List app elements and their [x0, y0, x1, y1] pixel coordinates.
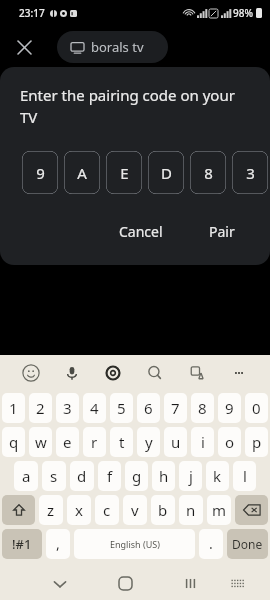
- staticText: y: [145, 432, 153, 452]
- button[interactable]: More options: [218, 355, 260, 391]
- staticText: 0: [252, 398, 261, 418]
- button[interactable]: A: [64, 151, 100, 194]
- button[interactable]: r: [83, 427, 106, 457]
- button[interactable]: 9: [22, 151, 58, 194]
- button[interactable]: w: [29, 427, 52, 457]
- button[interactable]: Shift: [2, 495, 35, 525]
- staticText: t: [119, 432, 125, 452]
- button[interactable]: h: [152, 461, 175, 491]
- staticText: Cancel: [119, 222, 163, 241]
- button[interactable]: a: [14, 461, 38, 491]
- button[interactable]: Settings: [92, 355, 134, 391]
- button[interactable]: Cancel: [109, 216, 173, 247]
- button[interactable]: k: [206, 461, 229, 491]
- button[interactable]: Search: [134, 355, 176, 391]
- button[interactable]: 8: [191, 393, 214, 423]
- staticText: D: [161, 163, 172, 183]
- button[interactable]: Recent apps: [171, 567, 209, 600]
- staticText: c: [103, 500, 111, 520]
- staticText: z: [47, 500, 55, 520]
- button[interactable]: 3: [56, 393, 79, 423]
- button[interactable]: Hide keyboard: [41, 567, 79, 600]
- staticText: f: [107, 466, 113, 486]
- button[interactable]: u: [164, 427, 187, 457]
- staticText: Done: [232, 536, 263, 552]
- staticText: m: [212, 500, 227, 520]
- button[interactable]: g: [125, 461, 148, 491]
- button[interactable]: English (US): [74, 529, 195, 559]
- button[interactable]: Home: [106, 567, 144, 600]
- button[interactable]: !#1: [2, 529, 42, 559]
- button[interactable]: 4: [83, 393, 106, 423]
- staticText: 1: [9, 398, 18, 418]
- button[interactable]: q: [2, 427, 25, 457]
- button[interactable]: j: [179, 461, 202, 491]
- button[interactable]: Voice input: [51, 355, 92, 391]
- button[interactable]: d: [70, 461, 94, 491]
- button[interactable]: Translate: [176, 355, 218, 391]
- staticText: borals tv: [91, 38, 144, 56]
- button[interactable]: Pair: [199, 216, 245, 247]
- button[interactable]: t: [110, 427, 133, 457]
- staticText: g: [132, 466, 142, 486]
- button[interactable]: 6: [137, 393, 160, 423]
- button[interactable]: e: [56, 427, 79, 457]
- staticText: E: [120, 163, 129, 183]
- button[interactable]: n: [179, 495, 203, 525]
- button[interactable]: m: [207, 495, 231, 525]
- staticText: 2: [36, 398, 45, 418]
- staticText: u: [171, 432, 181, 452]
- staticText: n: [186, 500, 196, 520]
- button[interactable]: l: [233, 461, 256, 491]
- button[interactable]: f: [98, 461, 121, 491]
- staticText: i: [201, 432, 205, 452]
- button[interactable]: 1: [2, 393, 25, 423]
- staticText: English (US): [110, 538, 160, 550]
- staticText: a: [22, 466, 31, 486]
- staticText: d: [77, 466, 87, 486]
- staticText: k: [213, 466, 222, 486]
- staticText: 3: [63, 398, 72, 418]
- staticText: 8: [198, 398, 207, 418]
- staticText: Enter the pairing code on your TV: [20, 85, 244, 128]
- staticText: l: [243, 466, 247, 486]
- button[interactable]: 7: [164, 393, 187, 423]
- button[interactable]: Emoji: [10, 355, 51, 391]
- button[interactable]: 5: [110, 393, 133, 423]
- button[interactable]: borals tv: [57, 31, 168, 63]
- button[interactable]: 9: [218, 393, 241, 423]
- button[interactable]: x: [67, 495, 91, 525]
- staticText: 6: [144, 398, 153, 418]
- button[interactable]: Close: [10, 33, 38, 61]
- button[interactable]: b: [151, 495, 175, 525]
- staticText: w: [35, 432, 47, 452]
- staticText: Pair: [209, 222, 235, 241]
- button[interactable]: .: [199, 529, 223, 559]
- staticText: 9: [225, 398, 234, 418]
- button[interactable]: i: [191, 427, 214, 457]
- button[interactable]: 8: [190, 151, 226, 194]
- button[interactable]: ,: [46, 529, 70, 559]
- staticText: 8: [204, 163, 213, 183]
- button[interactable]: y: [137, 427, 160, 457]
- staticText: x: [75, 500, 83, 520]
- button[interactable]: o: [218, 427, 241, 457]
- staticText: !#1: [12, 535, 32, 553]
- button[interactable]: z: [39, 495, 63, 525]
- button[interactable]: Switch keyboard: [219, 567, 257, 600]
- button[interactable]: D: [148, 151, 184, 194]
- button[interactable]: c: [95, 495, 119, 525]
- staticText: q: [9, 432, 19, 452]
- button[interactable]: v: [123, 495, 147, 525]
- button[interactable]: s: [42, 461, 66, 491]
- staticText: 5: [117, 398, 126, 418]
- staticText: 98%: [233, 6, 253, 20]
- button[interactable]: Done: [227, 529, 268, 559]
- button[interactable]: p: [245, 427, 268, 457]
- staticText: 3: [246, 163, 255, 183]
- button[interactable]: 0: [245, 393, 268, 423]
- button[interactable]: 2: [29, 393, 52, 423]
- button[interactable]: 3: [232, 151, 268, 194]
- button[interactable]: E: [106, 151, 142, 194]
- button[interactable]: Backspace: [235, 495, 268, 525]
